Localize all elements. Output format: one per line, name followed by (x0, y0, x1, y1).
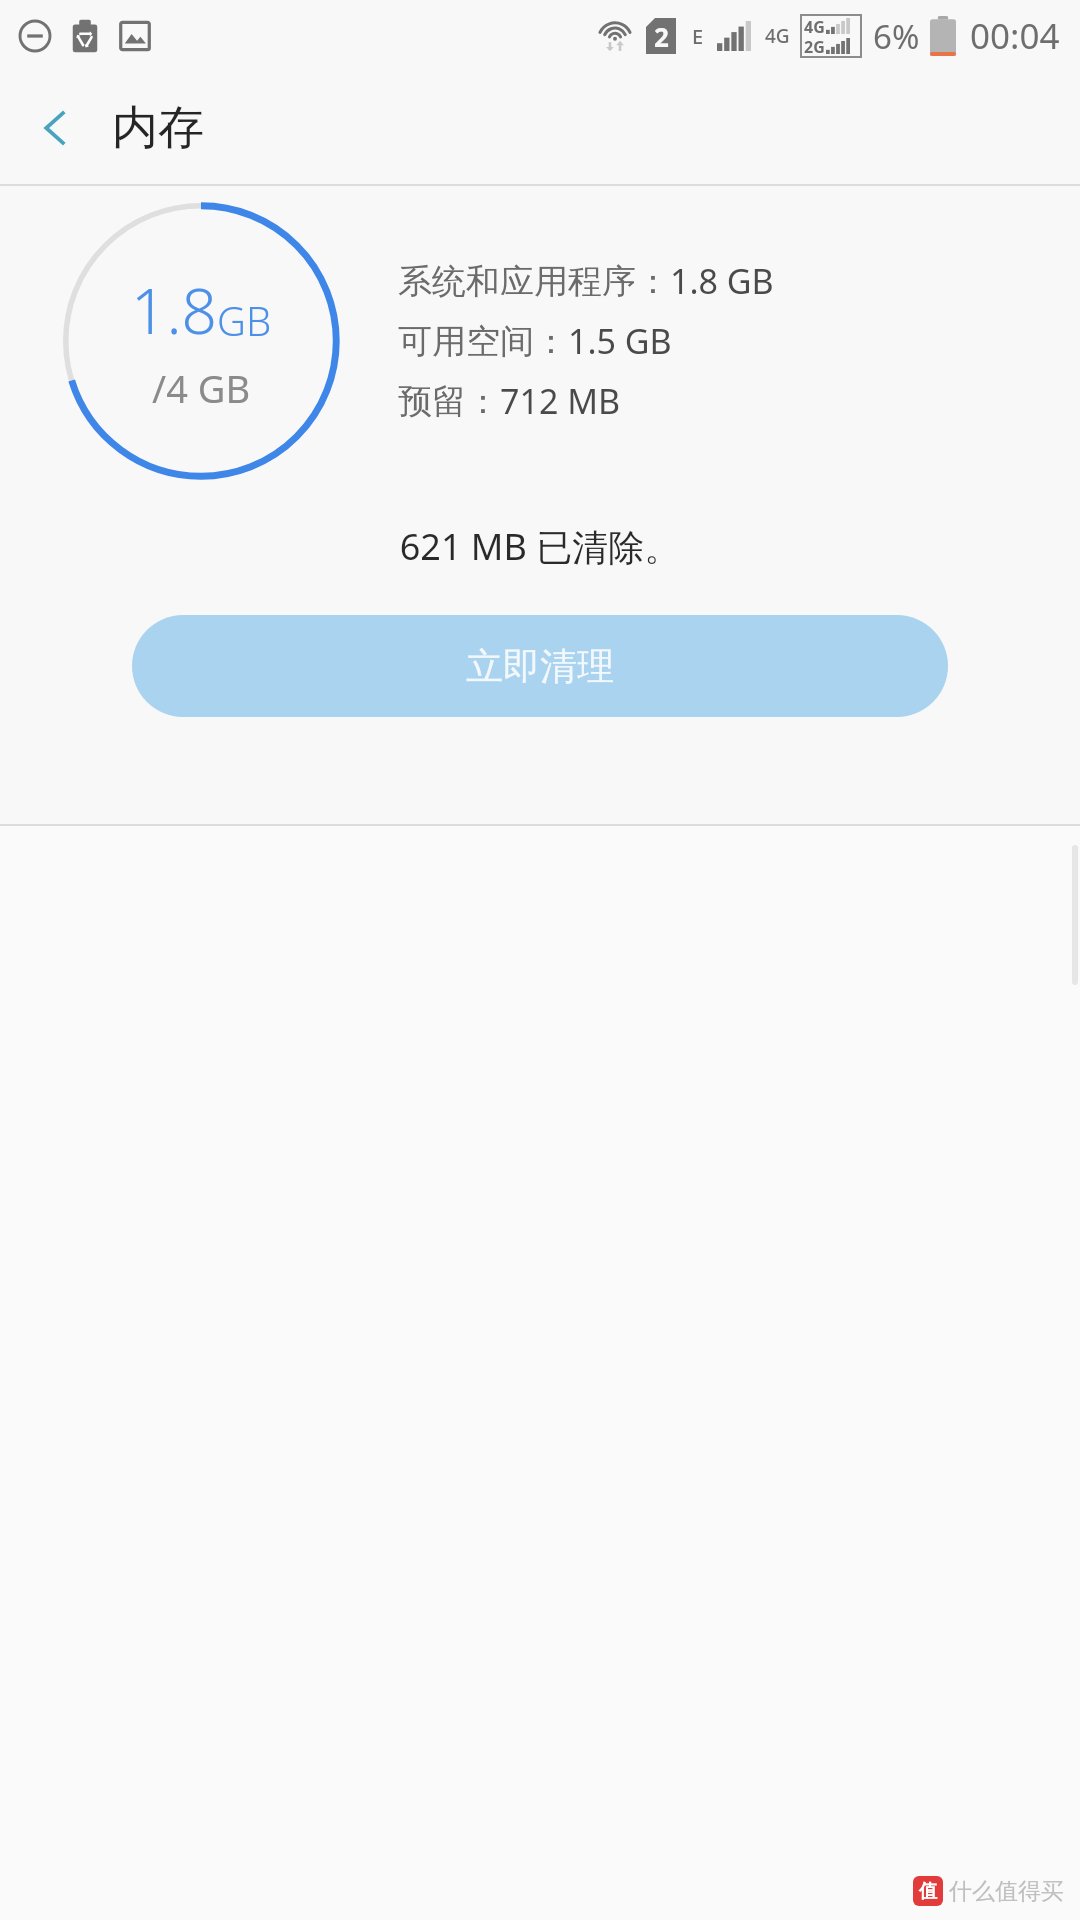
staticText: 可用空间： (398, 320, 568, 363)
staticText: 6% (873, 14, 920, 59)
staticText: 什么值得买 (949, 1877, 1064, 1906)
button[interactable]: Back (26, 99, 84, 157)
staticText: 4G (765, 23, 790, 49)
staticText: 2 (654, 19, 669, 54)
staticText: /4 GB (152, 362, 251, 414)
staticText: 系统和应用程序： (398, 260, 670, 303)
staticText: 内存 (112, 99, 204, 157)
staticText: 4G (804, 16, 825, 36)
staticText: 712 MB (500, 378, 621, 424)
staticText: 值 (919, 1880, 937, 1903)
staticText: GB (217, 293, 272, 347)
staticText: 2G (804, 36, 825, 56)
staticText: 1.8 GB (670, 258, 774, 304)
staticText: 预留： (398, 380, 500, 423)
staticText: E (692, 23, 704, 50)
staticText: 1.8 (131, 268, 217, 352)
button[interactable]: 立即清理 (132, 615, 948, 717)
staticText: 1.5 GB (568, 318, 672, 364)
staticText: 立即清理 (466, 643, 614, 690)
staticText: 621 MB 已清除。 (0, 522, 1080, 571)
staticText: 00:04 (970, 12, 1060, 60)
